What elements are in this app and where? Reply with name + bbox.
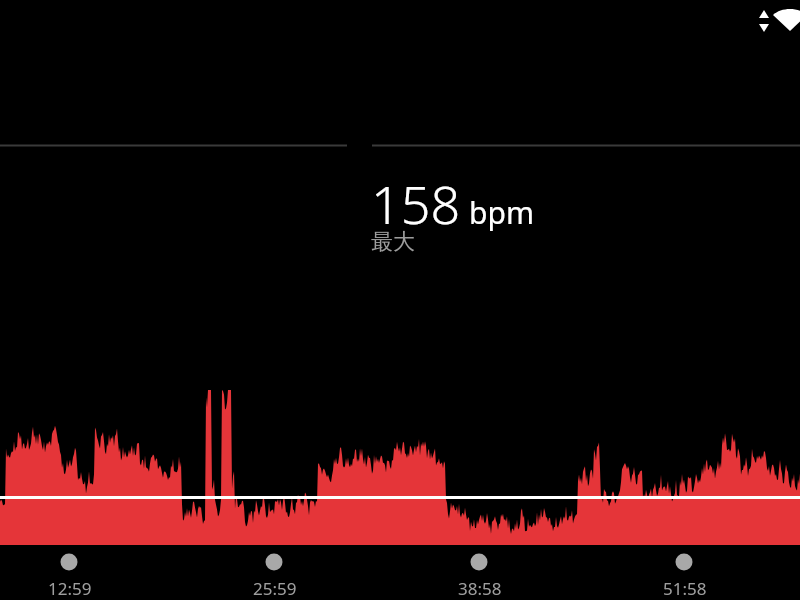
button[interactable]: 158 (371, 168, 534, 239)
staticText: 38:58 (458, 577, 502, 600)
staticText: bpm (469, 192, 534, 233)
button[interactable]: Status: data transfer and Wi-Fi (750, 4, 796, 28)
staticText: 12:59 (48, 577, 92, 600)
staticText: 最大 (371, 228, 415, 256)
button[interactable]: 25:59 (245, 576, 305, 600)
button[interactable]: 51:58 (655, 576, 715, 600)
staticText: 158 (371, 168, 461, 239)
staticText: 51:58 (663, 577, 707, 600)
staticText: 25:59 (253, 577, 297, 600)
button[interactable]: 12:59 (40, 576, 100, 600)
button[interactable]: 38:58 (450, 576, 510, 600)
